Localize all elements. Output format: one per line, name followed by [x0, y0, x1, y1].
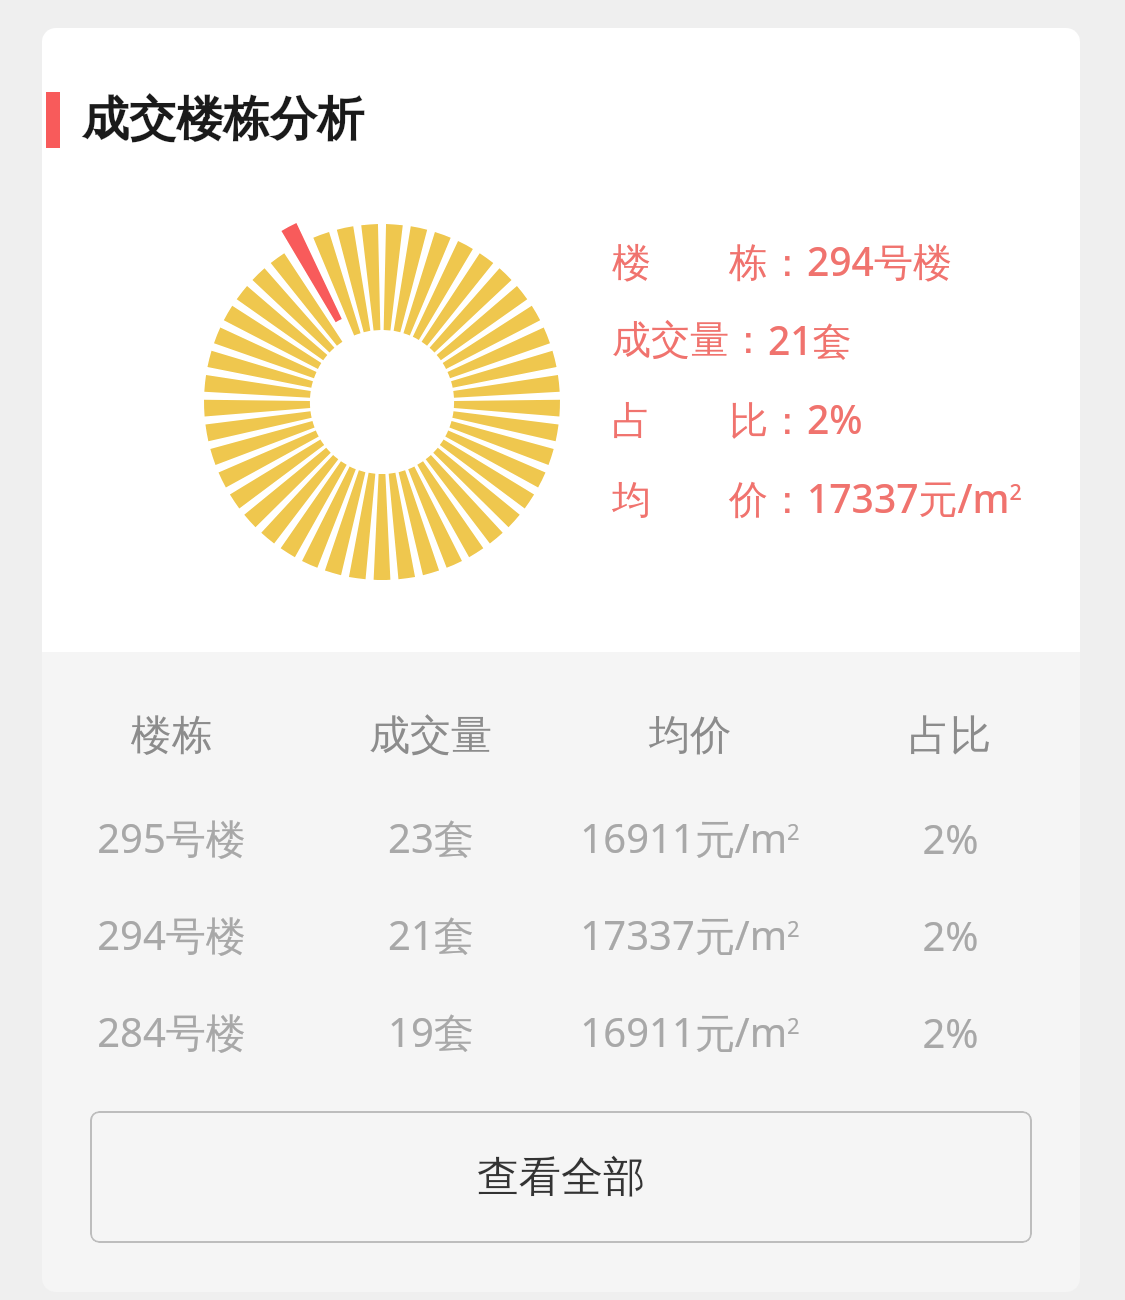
staticText: 成交量：: [612, 315, 768, 364]
staticText: 21套: [388, 907, 474, 962]
staticText: 成交量: [369, 710, 492, 762]
staticText: 占 比：: [612, 392, 807, 445]
staticText: 楼 栋：: [612, 234, 807, 287]
staticText: 2%: [922, 811, 979, 865]
staticText: 均价: [649, 710, 731, 762]
staticText: 2%: [807, 392, 863, 445]
staticText: 295号楼: [97, 810, 246, 865]
staticText: 占比: [909, 710, 991, 762]
staticText: 16911元/m2: [580, 810, 800, 865]
button[interactable]: 查看全部: [90, 1111, 1032, 1243]
staticText: 284号楼: [97, 1004, 246, 1059]
staticText: 查看全部: [477, 1151, 645, 1204]
staticText: 294号楼: [97, 907, 246, 962]
staticText: 成交楼栋分析: [82, 90, 364, 149]
staticText: 均 价：17337元/m2: [612, 471, 1022, 524]
staticText: 16911元/m2: [580, 1004, 800, 1059]
staticText: 楼栋: [131, 710, 213, 762]
staticText: 2%: [922, 1005, 979, 1059]
staticText: 21套: [768, 313, 852, 366]
staticText: 2%: [922, 908, 979, 962]
staticText: 23套: [388, 810, 474, 865]
staticText: 294号楼: [807, 234, 952, 287]
staticText: 17337元/m2: [580, 907, 800, 962]
staticText: 19套: [388, 1004, 474, 1059]
